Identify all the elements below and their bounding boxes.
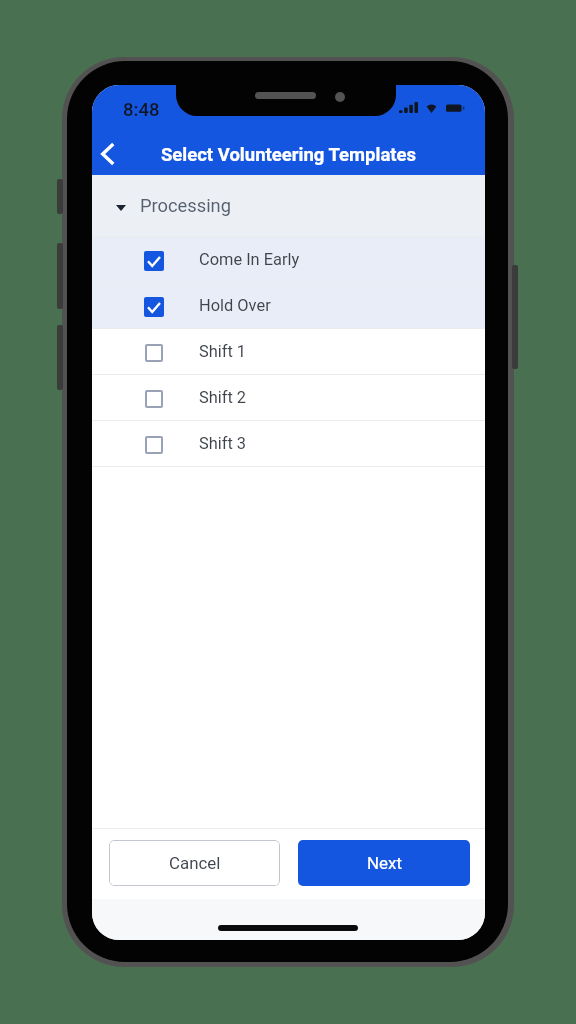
button[interactable]: Shift 3 [92, 421, 485, 466]
staticText: Shift 3 [199, 434, 247, 453]
button[interactable]: Processing [92, 175, 485, 236]
button[interactable]: Cancel [109, 840, 280, 886]
staticText: Cancel [169, 853, 221, 873]
button[interactable]: Shift 2 [92, 375, 485, 420]
button[interactable]: Next [298, 840, 470, 886]
staticText: Hold Over [199, 296, 271, 315]
staticText: Shift 2 [199, 388, 247, 407]
staticText: 8:48 [123, 99, 160, 121]
staticText: Shift 1 [199, 342, 247, 361]
button[interactable]: Hold Over [92, 283, 485, 328]
button[interactable]: Back [92, 131, 131, 177]
staticText: Next [367, 853, 402, 873]
button[interactable]: Come In Early [92, 237, 485, 282]
staticText: Come In Early [199, 250, 300, 269]
staticText: Processing [140, 195, 231, 216]
staticText: Select Volunteering Templates [92, 144, 485, 166]
button[interactable]: Shift 1 [92, 329, 485, 374]
